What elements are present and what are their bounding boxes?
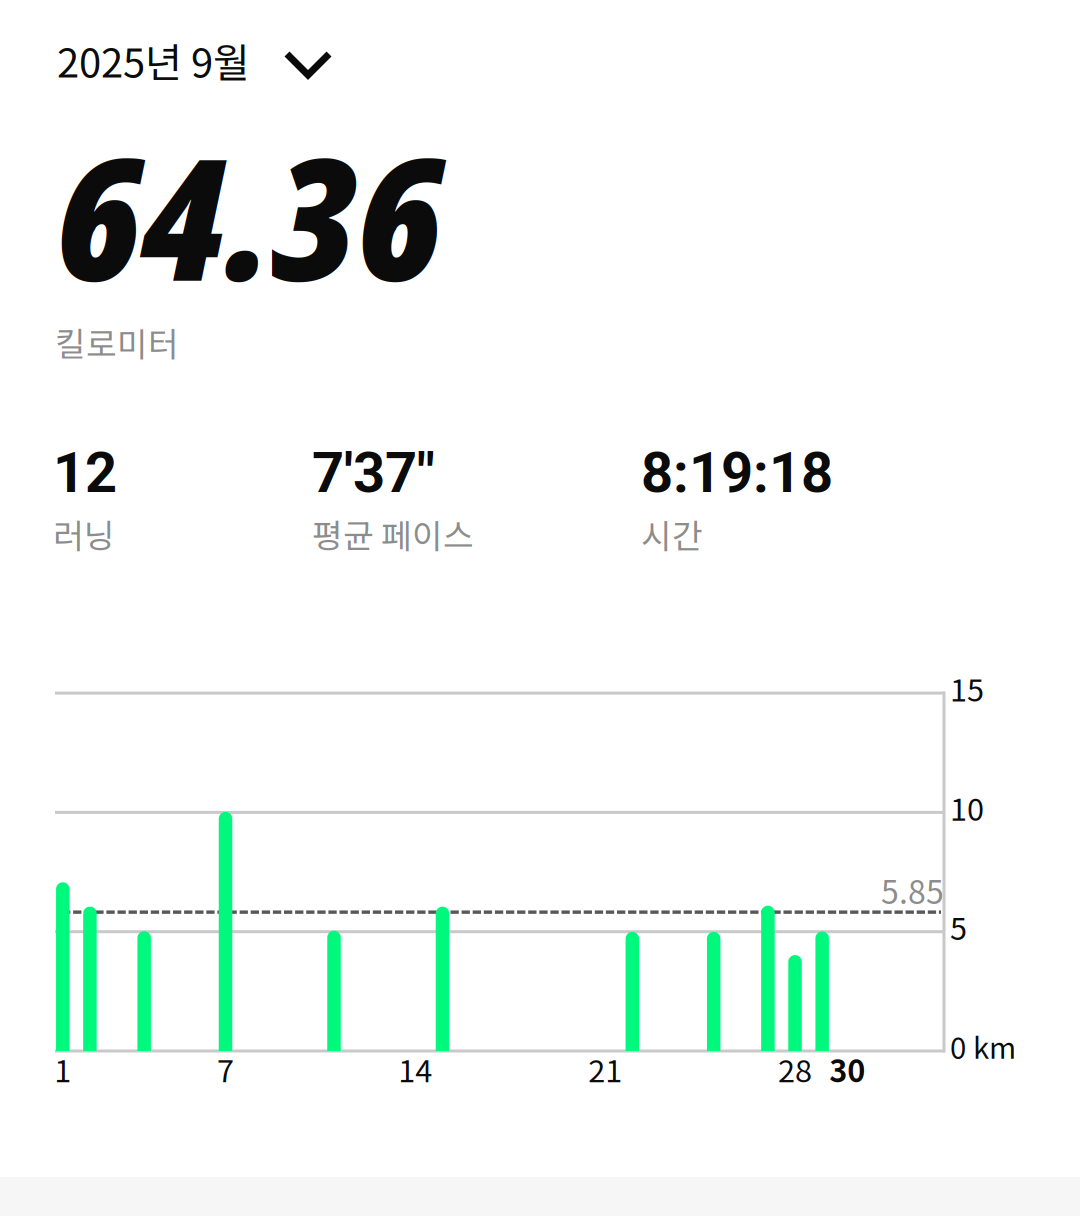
staticText: 러닝 — [53, 510, 115, 558]
button[interactable]: 2025년 9월 — [0, 30, 1080, 90]
staticText: 7 — [217, 1047, 234, 1091]
staticText: 평균 페이스 — [312, 510, 474, 558]
staticText: 1 — [54, 1047, 71, 1091]
staticText: 8:19:18 — [641, 440, 833, 506]
staticText: 7'37" — [312, 440, 435, 506]
staticText: 시간 — [641, 510, 703, 558]
staticText: 킬로미터 — [55, 318, 179, 366]
staticText: 15 — [950, 666, 984, 710]
staticText: 21 — [588, 1047, 622, 1091]
staticText: 30 — [829, 1047, 865, 1091]
staticText: 10 — [950, 785, 984, 830]
staticText: 2025년 9월 — [57, 31, 250, 89]
staticText: 14 — [398, 1047, 432, 1091]
staticText: 5 — [950, 904, 967, 949]
staticText: 28 — [778, 1047, 812, 1091]
staticText: 12 — [53, 440, 117, 506]
staticText: 0 km — [950, 1025, 1016, 1067]
staticText: 64.36 — [56, 101, 442, 329]
staticText: 5.85 — [881, 867, 944, 913]
